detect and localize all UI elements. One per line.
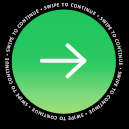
button[interactable]: Swipe to continue — [0, 0, 129, 129]
